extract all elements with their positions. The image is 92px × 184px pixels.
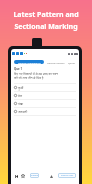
button[interactable]: General Intelligence xyxy=(14,60,44,64)
button[interactable]: General English xyxy=(47,61,65,64)
button[interactable]: Report question xyxy=(49,174,53,178)
staticText: General Intelligence xyxy=(18,61,41,64)
staticText: कुर्सी xyxy=(18,86,24,90)
button[interactable]: Previous question xyxy=(14,174,18,178)
staticText: अलमारी xyxy=(18,110,28,114)
button[interactable]: अलमारी xyxy=(14,108,76,115)
staticText: Save & Next xyxy=(61,174,74,177)
staticText: Latest Pattern and xyxy=(13,10,79,20)
staticText: Que 1 xyxy=(14,67,23,71)
button[interactable]: Bookmark xyxy=(21,174,25,178)
staticText: Submit xyxy=(31,174,38,177)
button[interactable]: कुर्सी xyxy=(14,84,76,91)
button[interactable]: Quant xyxy=(68,61,76,64)
button[interactable]: मेज xyxy=(14,92,76,99)
staticText: दिए गए विकल्पों में से उस शब्द का चयन कर… xyxy=(14,72,58,80)
button[interactable]: पंखा xyxy=(14,100,76,107)
staticText: Sectional Marking xyxy=(14,22,78,32)
button[interactable]: Save & Next xyxy=(58,173,76,178)
staticText: मेज xyxy=(18,94,23,98)
staticText: पंखा xyxy=(18,102,24,106)
button[interactable]: Submit xyxy=(30,173,39,178)
